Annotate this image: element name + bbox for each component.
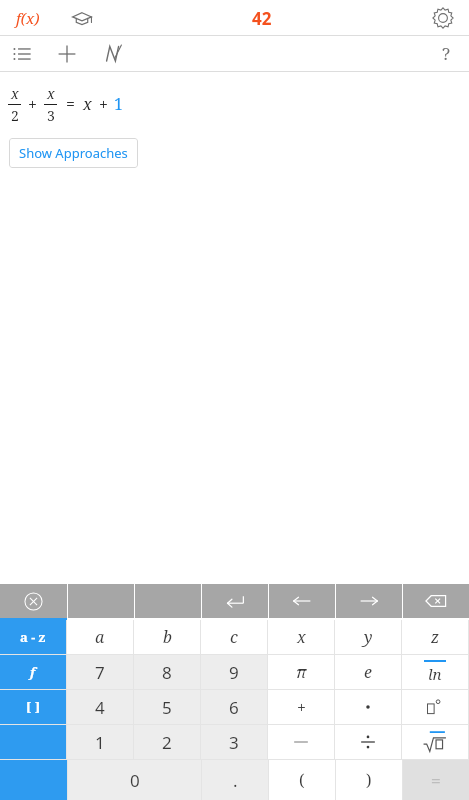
button[interactable]: + — [268, 690, 334, 724]
button[interactable]: Functions — [0, 0, 56, 36]
staticText: 4 — [95, 696, 105, 719]
staticText: 0 — [130, 769, 140, 792]
staticText: 42 — [252, 7, 272, 30]
staticText: z — [431, 626, 440, 648]
button[interactable]: x — [268, 620, 334, 654]
staticText: + — [99, 93, 108, 115]
button[interactable]: π — [268, 655, 334, 689]
staticText: f — [30, 663, 36, 681]
button[interactable]: Key — [402, 655, 468, 689]
button[interactable]: List — [0, 36, 44, 71]
button[interactable]: Settings — [417, 0, 469, 36]
staticText: 2 — [162, 731, 172, 754]
button[interactable]: Key — [402, 690, 468, 724]
button[interactable]: 1 — [67, 725, 133, 759]
button[interactable]: 7 — [67, 655, 133, 689]
staticText: 9 — [229, 661, 239, 684]
staticText: 1 — [95, 731, 105, 754]
button[interactable]: b — [134, 620, 200, 654]
button[interactable]: Right — [336, 584, 402, 618]
staticText: b — [163, 626, 172, 648]
staticText: 7 — [95, 661, 105, 684]
staticText: π — [296, 661, 307, 683]
staticText: [ ] — [26, 698, 41, 716]
staticText: 5 — [162, 696, 172, 719]
button[interactable]: Enter — [202, 584, 268, 618]
staticText: = — [431, 769, 441, 792]
button[interactable]: 8 — [134, 655, 200, 689]
staticText: = — [66, 93, 75, 115]
button[interactable]: 0 — [68, 760, 201, 800]
button[interactable]: Show Approaches — [9, 138, 138, 168]
button[interactable]: Add — [44, 36, 90, 71]
staticText: ? — [442, 42, 451, 65]
button[interactable]: . — [202, 760, 268, 800]
staticText: 3 — [47, 106, 55, 124]
staticText: 3 — [229, 731, 239, 754]
button[interactable]: c — [201, 620, 267, 654]
button[interactable]: 4 — [67, 690, 133, 724]
button[interactable]: a — [67, 620, 133, 654]
staticText: a - z — [20, 628, 46, 646]
button[interactable]: 6 — [201, 690, 267, 724]
button[interactable]: close — [0, 584, 67, 618]
button[interactable]: y — [335, 620, 401, 654]
button[interactable]: z — [402, 620, 468, 654]
staticText: . — [233, 769, 238, 792]
button[interactable]: e — [335, 655, 401, 689]
button[interactable]: Help — [423, 36, 469, 71]
button[interactable]: [ ] — [0, 690, 66, 724]
staticText: Show Approaches — [19, 144, 128, 162]
staticText: c — [230, 626, 238, 648]
button[interactable]: Handwriting — [90, 36, 136, 71]
button[interactable]: ( — [269, 760, 335, 800]
staticText: + — [28, 93, 37, 115]
button[interactable]: Key — [268, 725, 334, 759]
staticText: f(x) — [16, 8, 40, 28]
button[interactable]: Key — [335, 725, 401, 759]
staticText: 2 — [11, 106, 19, 124]
staticText: e — [364, 661, 372, 683]
staticText: + — [297, 696, 306, 718]
staticText: x — [11, 84, 19, 103]
staticText: a — [95, 626, 105, 648]
staticText: ln — [428, 664, 442, 684]
button[interactable]: Learn — [56, 0, 108, 36]
button[interactable]: 3 — [201, 725, 267, 759]
button[interactable]: Key — [402, 725, 468, 759]
button[interactable]: 2 — [134, 725, 200, 759]
staticText: 8 — [162, 661, 172, 684]
staticText: ( — [299, 769, 305, 791]
staticText: 6 — [229, 696, 239, 719]
button[interactable]: Key — [335, 690, 401, 724]
staticText: 1 — [114, 93, 123, 115]
button[interactable]: ) — [336, 760, 402, 800]
button[interactable]: 5 — [134, 690, 200, 724]
staticText: x — [47, 84, 55, 103]
staticText: ) — [366, 769, 372, 791]
button[interactable]: Left — [269, 584, 335, 618]
button[interactable]: f — [0, 655, 66, 689]
staticText: x — [297, 626, 306, 648]
staticText: x — [83, 93, 92, 115]
button[interactable]: 9 — [201, 655, 267, 689]
staticText: y — [364, 626, 373, 648]
button[interactable]: Backspace — [403, 584, 469, 618]
button[interactable]: a - z — [0, 620, 66, 654]
